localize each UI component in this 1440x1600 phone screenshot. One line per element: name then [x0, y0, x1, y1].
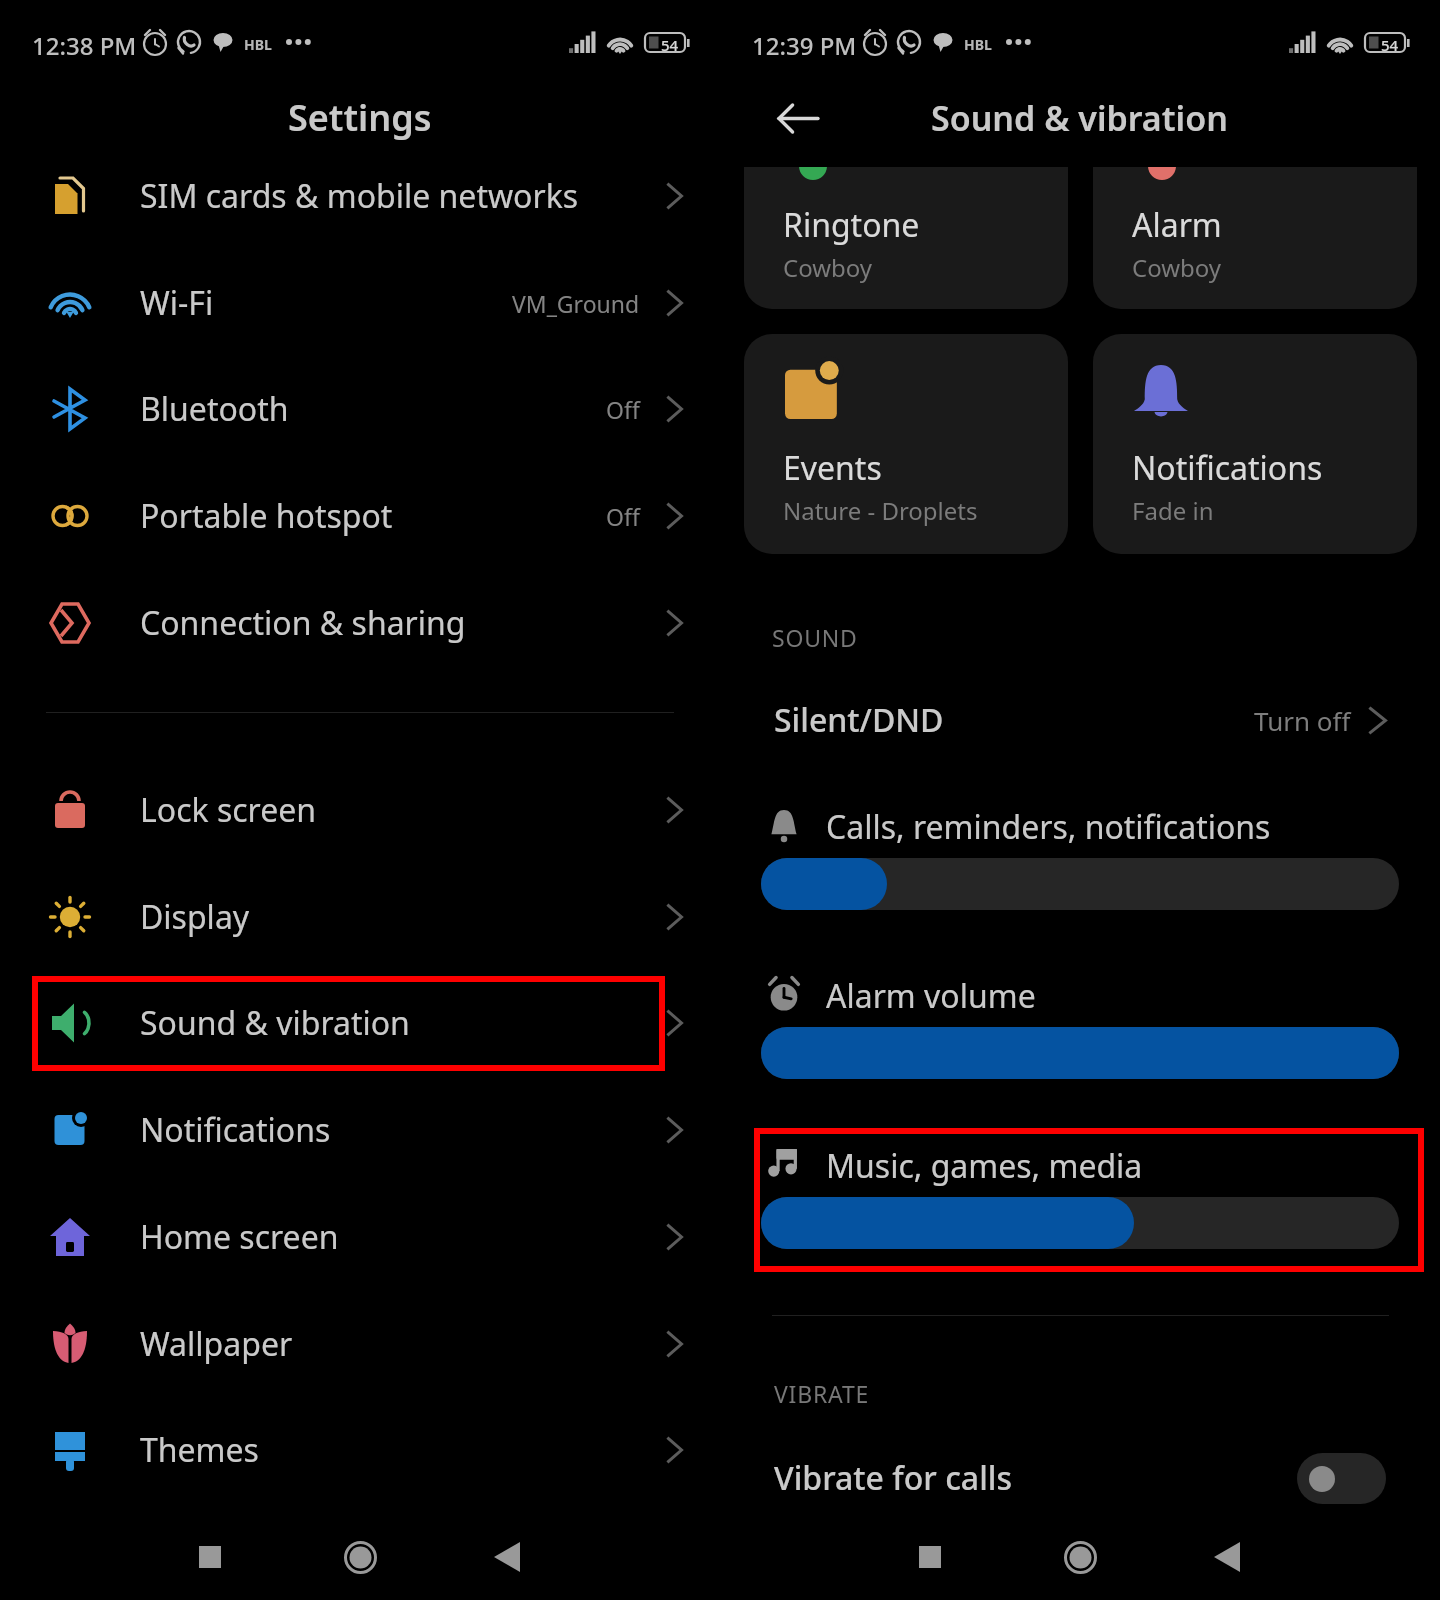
- staticText: Alarm: [1132, 203, 1222, 247]
- staticText: 54: [661, 35, 679, 55]
- button[interactable]: Home: [1046, 1523, 1114, 1591]
- button[interactable]: Display: [0, 873, 720, 961]
- staticText: Music, games, media: [826, 1144, 1143, 1188]
- staticText: Events: [783, 446, 882, 490]
- button[interactable]: Portable hotspot: [0, 472, 720, 560]
- button[interactable]: Notifications: [1093, 334, 1417, 554]
- staticText: SOUND: [772, 622, 858, 653]
- button[interactable]: Silent/DND: [720, 676, 1440, 764]
- staticText: Cowboy: [783, 251, 873, 284]
- staticText: Themes: [140, 1428, 259, 1472]
- staticText: 12:38 PM: [32, 29, 137, 62]
- staticText: Bluetooth: [140, 387, 289, 431]
- staticText: Settings: [288, 93, 432, 142]
- staticText: Cowboy: [1132, 251, 1222, 284]
- button[interactable]: Alarm volume: [720, 974, 1440, 1112]
- staticText: Notifications: [1132, 446, 1323, 490]
- button[interactable]: Ringtone: [744, 167, 1068, 309]
- button[interactable]: Vibrate for calls: [720, 1434, 1440, 1522]
- staticText: Sound & vibration: [140, 1001, 410, 1045]
- button[interactable]: Wallpaper: [0, 1300, 720, 1388]
- button[interactable]: Themes: [0, 1406, 720, 1494]
- button[interactable]: Back: [473, 1523, 541, 1591]
- staticText: Off: [606, 501, 640, 532]
- button[interactable]: Lock screen: [0, 766, 720, 854]
- staticText: Portable hotspot: [140, 494, 393, 538]
- button[interactable]: Recents: [176, 1523, 244, 1591]
- button[interactable]: Sound & vibration: [0, 979, 720, 1067]
- button[interactable]: Back: [1193, 1523, 1261, 1591]
- staticText: VIBRATE: [774, 1378, 870, 1409]
- button[interactable]: Back: [761, 91, 833, 145]
- staticText: 12:39 PM: [752, 29, 857, 62]
- staticText: Sound & vibration: [931, 95, 1228, 141]
- button[interactable]: SIM cards & mobile networks: [0, 152, 720, 240]
- button[interactable]: Wi-Fi: [0, 259, 720, 347]
- button[interactable]: Events: [744, 334, 1068, 554]
- staticText: Home screen: [140, 1215, 339, 1259]
- staticText: Fade in: [1132, 494, 1214, 527]
- staticText: Alarm volume: [826, 974, 1036, 1018]
- staticText: Silent/DND: [774, 698, 944, 742]
- button[interactable]: Bluetooth: [0, 365, 720, 453]
- staticText: Notifications: [140, 1108, 331, 1152]
- button[interactable]: Music, games, media: [720, 1144, 1440, 1282]
- staticText: Vibrate for calls: [774, 1456, 1012, 1500]
- staticText: Display: [140, 895, 250, 939]
- button[interactable]: Vibrate for calls: [1297, 1453, 1386, 1504]
- staticText: HBL: [964, 35, 992, 54]
- staticText: VM_Ground: [512, 288, 640, 319]
- button[interactable]: Notifications: [0, 1086, 720, 1174]
- button[interactable]: Home: [326, 1523, 394, 1591]
- staticText: SIM cards & mobile networks: [140, 174, 579, 218]
- button[interactable]: Recents: [896, 1523, 964, 1591]
- button[interactable]: Calls, reminders, notifications: [720, 805, 1440, 943]
- staticText: Calls, reminders, notifications: [826, 805, 1271, 849]
- staticText: Lock screen: [140, 788, 317, 832]
- staticText: Turn off: [1254, 703, 1351, 738]
- staticText: Nature - Droplets: [783, 494, 978, 527]
- button[interactable]: Connection & sharing: [0, 579, 720, 667]
- staticText: Ringtone: [783, 203, 920, 247]
- staticText: Connection & sharing: [140, 601, 466, 645]
- staticText: HBL: [244, 35, 272, 54]
- button[interactable]: Home screen: [0, 1193, 720, 1281]
- staticText: Wi-Fi: [140, 281, 214, 325]
- staticText: 54: [1381, 35, 1399, 55]
- staticText: Off: [606, 394, 640, 425]
- staticText: Wallpaper: [140, 1322, 293, 1366]
- button[interactable]: Alarm: [1093, 167, 1417, 309]
